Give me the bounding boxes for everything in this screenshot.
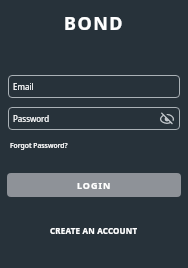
button[interactable]: CREATE AN ACCOUNT xyxy=(50,225,138,236)
button[interactable]: Email xyxy=(8,75,180,98)
staticText: Password xyxy=(13,113,50,124)
button[interactable]: Forgot Password? xyxy=(10,141,68,150)
button[interactable]: LOGIN xyxy=(7,173,181,197)
staticText: LOGIN xyxy=(77,179,112,191)
button[interactable]: Password xyxy=(8,107,180,130)
staticText: Email xyxy=(13,81,34,92)
staticText: BOND xyxy=(64,11,125,36)
